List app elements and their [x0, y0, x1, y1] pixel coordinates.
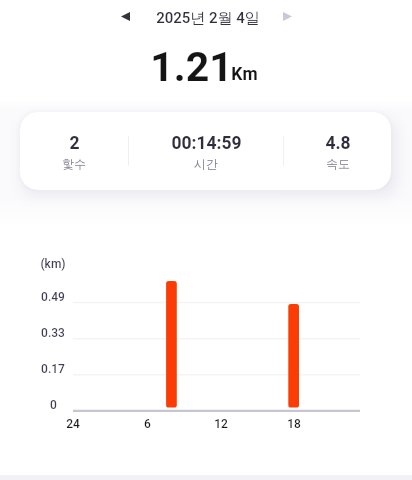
staticText: 속도 — [326, 156, 350, 171]
staticText: 시간 — [194, 156, 218, 171]
button[interactable]: 00:14:59 — [129, 112, 283, 190]
staticText: 0.49 — [41, 290, 65, 304]
button[interactable]: 2 — [20, 112, 128, 190]
staticText: 4.8 — [325, 133, 351, 154]
staticText: 2025년 2월 4일 — [156, 9, 260, 28]
staticText: (km) — [40, 257, 66, 271]
staticText: 0.33 — [41, 326, 65, 340]
staticText: 2 — [69, 133, 80, 154]
staticText: 6 — [144, 417, 151, 431]
staticText: 0.17 — [41, 362, 65, 376]
staticText: 18 — [287, 417, 301, 431]
staticText: 0 — [50, 398, 57, 412]
button[interactable]: Previous day — [110, 1, 140, 31]
staticText: 1.21 — [150, 43, 233, 91]
button[interactable]: 4.8 — [284, 112, 391, 190]
staticText: 핯수 — [62, 156, 86, 171]
staticText: 00:14:59 — [171, 133, 242, 154]
staticText: Km — [231, 64, 258, 85]
staticText: 12 — [214, 417, 228, 431]
button[interactable]: Next day — [272, 1, 302, 31]
staticText: 24 — [66, 417, 80, 431]
